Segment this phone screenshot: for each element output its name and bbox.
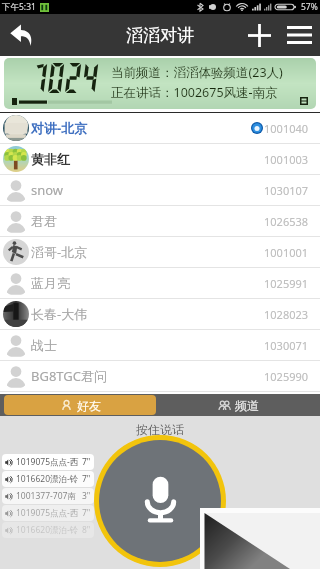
staticText: 1019075点点-西 [16,456,79,468]
button[interactable]: 对讲-北京 [0,113,320,143]
button[interactable]: 频道 [156,394,320,416]
staticText: 蓝月亮 [31,275,70,291]
button[interactable]: Push to talk [99,440,221,562]
button[interactable]: 滔哥-北京 [0,237,320,267]
staticText: snow [31,181,64,199]
staticText: 1030107 [264,183,309,198]
staticText: 频道 [235,398,259,413]
staticText: 1028023 [264,307,309,322]
button[interactable]: BG8TGC君问 [0,361,320,391]
staticText: 1001377-707南 [16,490,76,502]
staticText: 滔哥-北京 [31,243,88,261]
button[interactable]: snow [0,175,320,205]
button[interactable]: 蓝月亮 [0,268,320,298]
staticText: 正在讲话：1002675风速-南京 [111,84,278,101]
staticText: 滔滔对讲 [126,25,194,46]
staticText: 1001001 [264,245,309,260]
staticText: 1030071 [264,338,309,353]
button[interactable]: 好友 [4,395,156,415]
staticText: 1019075点点-西 [16,507,79,519]
button[interactable]: Menu [281,17,317,53]
button[interactable]: Back [0,14,44,56]
staticText: 1001040 [264,121,309,136]
staticText: 按住说话 [136,422,184,437]
staticText: 7" [82,473,91,485]
button[interactable]: Add [241,17,277,53]
staticText: 长春-大伟 [31,305,88,323]
staticText: 1025991 [264,276,309,291]
staticText: 8" [82,524,91,536]
staticText: 1026538 [264,214,309,229]
staticText: 1025990 [264,369,309,384]
staticText: 1016620漂泊-铃 [16,473,79,485]
staticText: 1001003 [264,152,309,167]
staticText: BG8TGC君问 [31,367,107,385]
staticText: 当前频道：滔滔体验频道(23人) [111,64,283,81]
staticText: 好友 [77,398,101,413]
staticText: 君君 [31,213,57,229]
staticText: 3" [82,490,91,502]
staticText: 1016620漂泊-铃 [16,524,79,536]
staticText: 下午5:31 [2,1,36,13]
button[interactable]: 长春-大伟 [0,299,320,329]
button[interactable]: 君君 [0,206,320,236]
staticText: 战士 [31,337,57,353]
button[interactable]: 战士 [0,330,320,360]
staticText: 黄非红 [31,151,70,167]
button[interactable]: 黄非红 [0,144,320,174]
staticText: 对讲-北京 [31,119,88,137]
staticText: 7" [82,456,91,468]
staticText: 7" [82,507,91,519]
staticText: 57% [301,1,318,13]
